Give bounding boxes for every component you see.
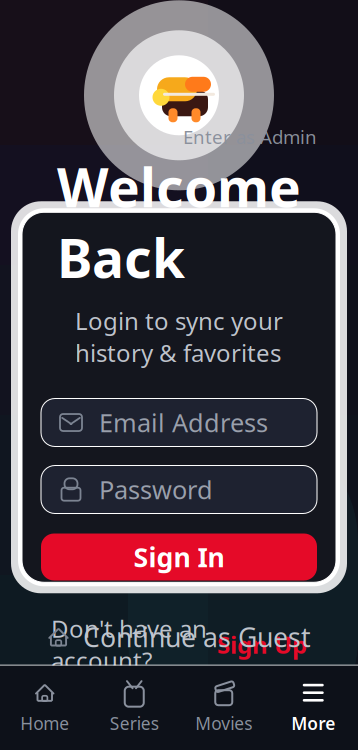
- staticText: Sign Up: [217, 628, 307, 660]
- staticText: Sign In: [133, 539, 224, 575]
- button[interactable]: Home: [0, 670, 89, 743]
- button[interactable]: Continue as Guest: [29, 609, 329, 665]
- button[interactable]: Series: [89, 670, 179, 743]
- staticText: Enter as Admin: [183, 124, 317, 149]
- staticText: Home: [20, 712, 69, 735]
- button[interactable]: Sign In: [41, 533, 317, 580]
- button[interactable]: Don't have an account?: [41, 606, 317, 682]
- button[interactable]: More: [268, 670, 358, 743]
- button[interactable]: Movies: [179, 670, 268, 743]
- button[interactable]: Enter as Admin: [183, 124, 317, 149]
- staticText: Login to sync your history & favorites: [75, 305, 283, 368]
- button[interactable]: Email Address: [41, 398, 317, 446]
- staticText: Series: [110, 712, 159, 735]
- staticText: More: [291, 712, 335, 735]
- staticText: Continue as Guest: [83, 619, 311, 655]
- staticText: Email Address: [99, 406, 268, 439]
- staticText: Movies: [195, 712, 252, 735]
- staticText: Password: [99, 473, 213, 506]
- staticText: Don't have an account?: [51, 612, 207, 676]
- button[interactable]: Password: [41, 465, 317, 513]
- staticText: Welcome Back: [57, 151, 301, 293]
